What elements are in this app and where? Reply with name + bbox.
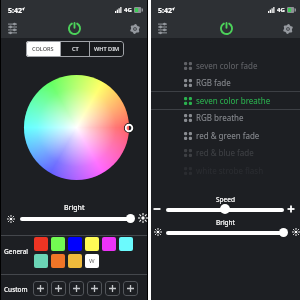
button[interactable]	[85, 237, 99, 251]
staticText: W	[89, 257, 95, 265]
staticText: Custom	[4, 285, 28, 294]
staticText: Speed	[216, 195, 235, 204]
button[interactable]	[68, 237, 82, 251]
button[interactable]	[51, 254, 65, 268]
button[interactable]: Add custom colour	[123, 281, 138, 296]
button[interactable]: W	[85, 254, 99, 268]
button[interactable]: Filters	[4, 20, 20, 36]
button[interactable]: red & green fade	[151, 127, 300, 144]
staticText: white strobe flash	[196, 165, 264, 176]
button[interactable]	[102, 237, 116, 251]
staticText: seven color breathe	[196, 95, 271, 106]
staticText: COLORS	[32, 45, 54, 53]
button[interactable]: CT	[61, 41, 89, 57]
staticText: 5:42	[158, 6, 172, 16]
staticText: seven color fade	[196, 60, 258, 71]
staticText: Bright	[216, 218, 235, 227]
staticText: Bright	[64, 203, 85, 213]
button[interactable]: Settings	[127, 21, 143, 37]
button[interactable]	[68, 254, 82, 268]
staticText: 4G	[277, 6, 285, 14]
button[interactable]	[51, 237, 65, 251]
button[interactable]	[34, 254, 48, 268]
button[interactable]: Filters	[154, 20, 170, 36]
button[interactable]: Add custom colour	[105, 281, 120, 296]
staticText: RGB fade	[196, 77, 231, 88]
button[interactable]: red & blue fade	[151, 144, 300, 161]
button[interactable]: WHT DIM	[90, 41, 124, 57]
button[interactable]: RGB fade	[151, 74, 300, 91]
button[interactable]	[34, 237, 48, 251]
button[interactable]: COLORS	[26, 41, 60, 57]
staticText: 5:42	[8, 6, 22, 16]
staticText: WHT DIM	[94, 45, 120, 53]
staticText: General	[4, 247, 28, 256]
button[interactable]: Add custom colour	[69, 281, 84, 296]
button[interactable]: Settings	[280, 21, 296, 37]
staticText: red & green fade	[196, 130, 260, 141]
button[interactable]: seven color breathe	[151, 92, 300, 109]
button[interactable]: RGB breathe	[151, 109, 300, 126]
button[interactable]: Add custom colour	[87, 281, 102, 296]
button[interactable]: Power	[65, 19, 83, 37]
button[interactable]	[119, 237, 133, 251]
staticText: CT	[72, 45, 79, 53]
button[interactable]: Add custom colour	[51, 281, 66, 296]
staticText: red & blue fade	[196, 147, 254, 158]
button[interactable]: seven color fade	[151, 57, 300, 74]
button[interactable]: Add custom colour	[33, 281, 48, 296]
button[interactable]: Power	[217, 19, 235, 37]
staticText: RGB breathe	[196, 112, 244, 123]
staticText: 4G	[124, 6, 132, 14]
